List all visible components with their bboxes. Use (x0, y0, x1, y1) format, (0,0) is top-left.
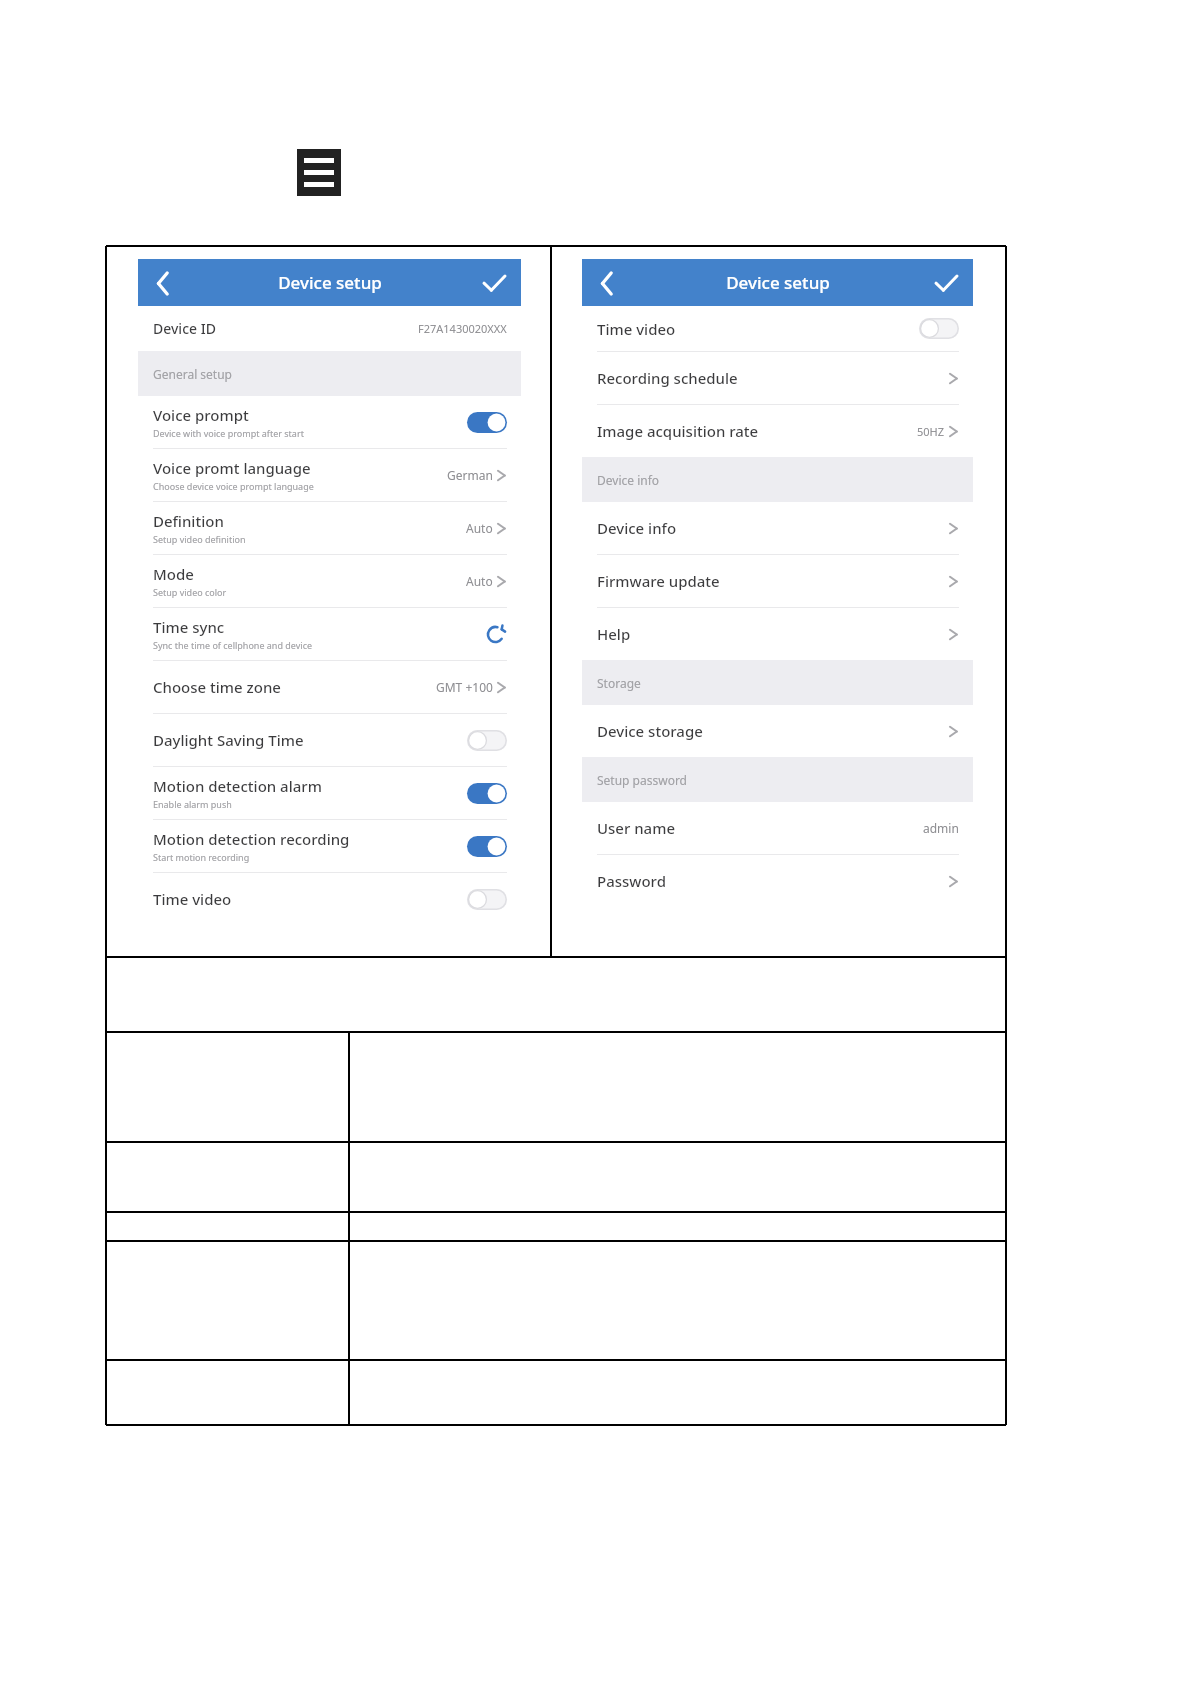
staticText: Recording schedule (597, 368, 738, 388)
staticText: Enable alarm push (153, 798, 232, 810)
button[interactable]: Choose time zone (138, 661, 521, 713)
staticText: Mode (153, 564, 194, 584)
staticText: Device with voice prompt after start (153, 427, 304, 439)
staticText: General setup (153, 366, 232, 382)
staticText: Setup video color (153, 586, 227, 598)
staticText: German (447, 467, 493, 483)
button[interactable]: Definition (138, 502, 521, 554)
staticText: Device info (597, 518, 677, 538)
button[interactable]: Menu (297, 149, 341, 196)
button[interactable]: Motion detection alarm (138, 767, 521, 819)
staticText: Daylight Saving Time (153, 730, 304, 750)
staticText: Voice prompt (153, 405, 249, 425)
button[interactable]: Back (146, 266, 180, 300)
staticText: Device storage (597, 721, 703, 741)
staticText: admin (923, 820, 959, 836)
button[interactable]: Time video (582, 306, 973, 351)
staticText: Voice promt language (153, 458, 311, 478)
button[interactable]: Switch off (467, 730, 507, 751)
button[interactable]: Motion detection recording (138, 820, 521, 872)
button[interactable]: User name (582, 802, 973, 854)
staticText: Image acquisition rate (597, 421, 759, 441)
staticText: 50HZ (917, 424, 945, 439)
staticText: Motion detection recording (153, 829, 350, 849)
button[interactable]: Voice promt language (138, 449, 521, 501)
staticText: Device setup (278, 271, 382, 294)
button[interactable]: Switch off (919, 318, 959, 339)
button[interactable]: Time video (138, 873, 521, 925)
button[interactable]: Switch on (467, 412, 507, 433)
staticText: Time sync (153, 617, 225, 637)
button[interactable]: Mode (138, 555, 521, 607)
staticText: Storage (597, 675, 641, 691)
button[interactable]: Confirm (929, 266, 963, 300)
staticText: Firmware update (597, 571, 720, 591)
staticText: Device info (597, 472, 660, 488)
staticText: Choose device voice prompt language (153, 480, 314, 492)
staticText: Device ID (153, 319, 216, 338)
button[interactable]: Confirm (477, 266, 511, 300)
button[interactable]: Switch off (467, 889, 507, 910)
button[interactable]: Firmware update (582, 555, 973, 607)
button[interactable]: Device info (582, 502, 973, 554)
button[interactable]: Sync time (483, 622, 507, 646)
staticText: Start motion recording (153, 851, 250, 863)
button[interactable]: Recording schedule (582, 352, 973, 404)
staticText: Setup password (597, 772, 688, 788)
staticText: Auto (466, 573, 493, 589)
staticText: Help (597, 624, 631, 644)
button[interactable]: Switch on (467, 783, 507, 804)
staticText: Time video (597, 319, 676, 339)
button[interactable]: Time sync (138, 608, 521, 660)
staticText: Device setup (726, 271, 830, 294)
staticText: Time video (153, 889, 232, 909)
button[interactable]: Daylight Saving Time (138, 714, 521, 766)
staticText: F27A1430020XXX (418, 321, 507, 336)
staticText: Choose time zone (153, 677, 281, 697)
staticText: Definition (153, 511, 224, 531)
staticText: User name (597, 818, 676, 838)
button[interactable]: Voice prompt (138, 396, 521, 448)
staticText: Sync the time of cellphone and device (153, 639, 313, 651)
staticText: Password (597, 871, 666, 891)
staticText: Motion detection alarm (153, 776, 322, 796)
staticText: GMT +100 (436, 679, 493, 695)
button[interactable]: Switch on (467, 836, 507, 857)
button[interactable]: Device storage (582, 705, 973, 757)
staticText: Setup video definition (153, 533, 246, 545)
button[interactable]: Help (582, 608, 973, 660)
button[interactable]: Image acquisition rate (582, 405, 973, 457)
button[interactable]: Back (590, 266, 624, 300)
button[interactable]: Device ID (138, 306, 521, 351)
button[interactable]: Password (582, 855, 973, 907)
staticText: Auto (466, 520, 493, 536)
